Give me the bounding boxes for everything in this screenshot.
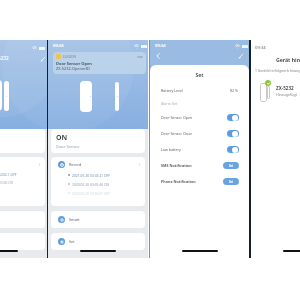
staticText: 2020-05-30 03:01:46 ON xyxy=(72,182,110,186)
staticText: Phone Notification xyxy=(161,179,196,184)
staticText: Record xyxy=(69,162,82,167)
button[interactable]: Back xyxy=(155,53,161,59)
button[interactable]: Edit xyxy=(238,53,244,59)
staticText: 5232 xyxy=(0,55,9,61)
staticText: Set xyxy=(150,71,249,78)
staticText: 09:34 xyxy=(255,45,266,51)
button[interactable]: ELESION xyxy=(53,52,146,74)
button[interactable]: Record xyxy=(51,157,145,206)
button[interactable]: Low battery xyxy=(150,141,249,157)
staticText: 03:46 ON xyxy=(0,180,14,184)
button[interactable]: Set xyxy=(51,233,145,250)
staticText: Battery Level xyxy=(161,88,183,93)
button[interactable]: Door Sensor Open xyxy=(150,109,249,125)
staticText: Low battery xyxy=(161,147,181,152)
staticText: ON xyxy=(56,133,68,143)
staticText: 82 % xyxy=(230,88,239,93)
staticText: SMS Notification xyxy=(161,163,192,168)
button[interactable]: Door Sensor Close xyxy=(150,125,249,141)
staticText: 5232-1-OFF xyxy=(0,172,17,176)
staticText: ELESION xyxy=(63,55,76,59)
staticText: Smart xyxy=(69,217,80,222)
button[interactable]: Phone Notification xyxy=(150,173,249,189)
staticText: Hinzugefügt xyxy=(276,92,297,97)
staticText: 2021-05-30 03:33:21 OFF xyxy=(72,173,111,177)
staticText: 1 Gerät(e) erfolgreich hinzuge xyxy=(255,68,300,73)
button[interactable]: Edit xyxy=(40,56,46,62)
staticText: Door Sensor Open xyxy=(161,115,193,120)
staticText: Door Sensor xyxy=(56,144,80,149)
staticText: › xyxy=(39,161,41,167)
button[interactable]: › xyxy=(0,157,45,206)
staticText: now xyxy=(137,55,143,59)
staticText: Door Sensor Close xyxy=(161,131,193,136)
staticText: 09:34 xyxy=(53,43,64,49)
staticText: ZX-5232-OpenerID xyxy=(56,66,90,71)
staticText: Set xyxy=(229,180,234,184)
staticText: Set xyxy=(69,239,75,244)
staticText: Door Sensor Open xyxy=(56,61,92,66)
button[interactable]: SMS Notification xyxy=(150,157,249,173)
staticText: › xyxy=(139,161,141,167)
staticText: Set xyxy=(229,164,234,168)
button[interactable]: Smart xyxy=(51,211,145,228)
staticText: Alarm Set xyxy=(161,101,178,106)
staticText: 2020-05-30 02:55:01 OFF xyxy=(72,191,111,195)
staticText: Gerät hin xyxy=(251,56,300,63)
button[interactable]: ON xyxy=(51,129,145,153)
staticText: 09:34 xyxy=(155,43,166,49)
staticText: ZX-5232 xyxy=(276,85,294,91)
